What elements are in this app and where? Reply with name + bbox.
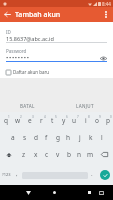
staticText: q	[4, 116, 8, 125]
staticText: r	[40, 116, 43, 125]
staticText: a	[11, 133, 15, 142]
staticText: i	[85, 116, 87, 125]
staticText: 5	[55, 115, 57, 119]
staticText: 7	[77, 115, 79, 119]
button[interactable]: Shift	[0, 146, 18, 163]
button[interactable]: w	[12, 112, 24, 129]
staticText: b	[67, 150, 71, 159]
staticText: Tambah akun	[15, 10, 61, 20]
staticText: ?123	[2, 172, 11, 177]
button[interactable]: p	[102, 112, 113, 129]
staticText: 8	[88, 115, 90, 119]
staticText: ••••••••	[6, 54, 30, 62]
staticText: Daftar akun baru	[13, 69, 50, 75]
staticText: k	[89, 133, 93, 142]
button[interactable]: h	[63, 129, 74, 146]
staticText: z	[22, 150, 26, 159]
button[interactable]: u	[69, 112, 80, 129]
button[interactable]: More options	[98, 7, 113, 22]
staticText: n	[77, 150, 82, 159]
button[interactable]: r	[36, 112, 47, 129]
staticText: 4	[44, 115, 46, 119]
button[interactable]: k	[85, 129, 96, 146]
staticText: Password	[6, 48, 27, 54]
button[interactable]: t	[47, 112, 58, 129]
button[interactable]: q	[0, 112, 12, 129]
staticText: 8:44	[102, 1, 111, 7]
staticText: u	[72, 116, 77, 125]
button[interactable]: l	[96, 129, 107, 146]
button[interactable]: Daftar akun baru	[6, 69, 50, 75]
staticText: 1	[8, 115, 10, 119]
staticText: w	[15, 116, 21, 125]
button[interactable]: a	[7, 129, 19, 146]
button[interactable]: Recents	[83, 185, 96, 200]
staticText: o	[95, 116, 99, 125]
staticText: g	[56, 133, 60, 142]
button[interactable]: ?123	[0, 163, 12, 185]
staticText: 15.8637@abc.ac.id	[6, 35, 54, 42]
button[interactable]: Enter	[100, 170, 110, 180]
button[interactable]: c	[41, 146, 52, 163]
staticText: .	[91, 170, 93, 178]
button[interactable]: n	[74, 146, 85, 163]
staticText: e	[28, 116, 32, 125]
button[interactable]: j	[74, 129, 85, 146]
staticText: ,	[16, 170, 18, 178]
button[interactable]: z	[18, 146, 30, 163]
button[interactable]: m	[85, 146, 96, 163]
button[interactable]: e	[24, 112, 36, 129]
staticText: BATAL	[20, 103, 35, 109]
staticText: 0	[110, 115, 112, 119]
staticText: 9	[99, 115, 101, 119]
button[interactable]: Home	[48, 185, 61, 200]
staticText: LANJUT	[76, 103, 94, 109]
button[interactable]: g	[52, 129, 63, 146]
button[interactable]: Change keyboard	[95, 185, 107, 200]
staticText: l	[101, 133, 103, 142]
staticText: y	[62, 116, 66, 125]
staticText: p	[106, 116, 110, 125]
button[interactable]: d	[30, 129, 41, 146]
button[interactable]: f	[41, 129, 52, 146]
button[interactable]: BATAL	[14, 100, 41, 112]
button[interactable]: s	[19, 129, 30, 146]
staticText: x	[34, 150, 38, 159]
staticText: s	[23, 133, 27, 142]
staticText: d	[34, 133, 38, 142]
button[interactable]: v	[52, 146, 63, 163]
button[interactable]: b	[63, 146, 74, 163]
button[interactable]: Show password	[98, 53, 109, 64]
button[interactable]: y	[58, 112, 69, 129]
button[interactable]: .	[88, 163, 96, 185]
staticText: v	[56, 150, 60, 159]
button[interactable]: o	[91, 112, 102, 129]
staticText: h	[66, 133, 71, 142]
button[interactable]: Backspace	[96, 146, 113, 163]
button[interactable]: Hide keyboard	[22, 185, 35, 200]
staticText: j	[79, 133, 81, 142]
staticText: 6	[66, 115, 68, 119]
staticText: ID	[6, 29, 11, 35]
staticText: t	[51, 116, 54, 125]
staticText: f	[45, 133, 48, 142]
button[interactable]: LANJUT	[70, 100, 100, 112]
staticText: c	[45, 150, 49, 159]
button[interactable]: Back	[0, 7, 15, 22]
button[interactable]: x	[30, 146, 41, 163]
staticText: 3	[32, 115, 34, 119]
staticText: 2	[20, 115, 22, 119]
staticText: m	[87, 150, 94, 159]
button[interactable]: ,	[12, 163, 22, 185]
button[interactable]: i	[80, 112, 91, 129]
